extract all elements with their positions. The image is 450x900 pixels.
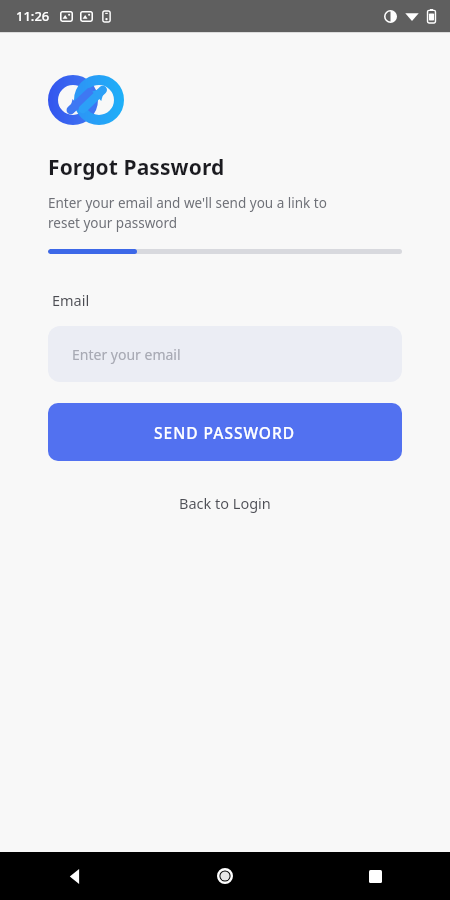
button[interactable]: Back: [0, 852, 150, 900]
staticText: Email: [52, 290, 90, 310]
staticText: SEND PASSWORD: [154, 422, 296, 443]
button[interactable]: SEND PASSWORD: [48, 403, 402, 461]
button[interactable]: Enter your email: [48, 326, 402, 382]
button[interactable]: Recent apps: [300, 852, 450, 900]
staticText: 11:26: [16, 7, 50, 25]
staticText: Back to Login: [179, 493, 271, 513]
staticText: Forgot Password: [48, 153, 225, 182]
button[interactable]: Back to Login: [165, 487, 285, 519]
staticText: Enter your email and we'll send you a li…: [48, 194, 327, 232]
staticText: Enter your email: [72, 345, 181, 364]
button[interactable]: Home: [150, 852, 300, 900]
